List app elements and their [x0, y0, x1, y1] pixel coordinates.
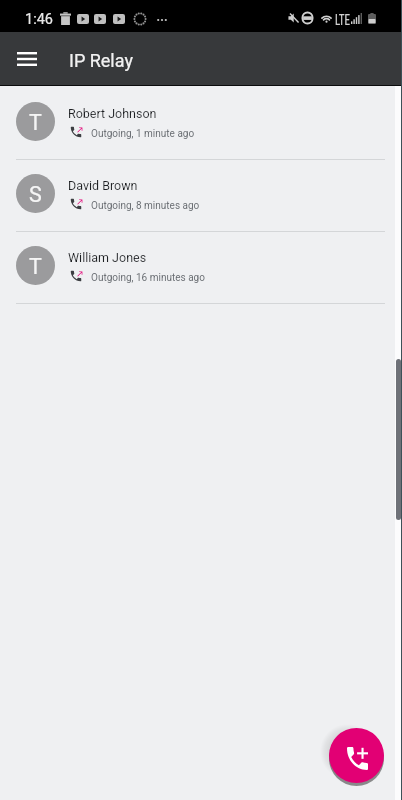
staticText: David Brown: [68, 178, 138, 193]
staticText: S: [29, 182, 42, 207]
button[interactable]: T: [0, 232, 402, 304]
button[interactable]: Open navigation drawer: [11, 43, 43, 75]
button[interactable]: S: [0, 160, 402, 232]
staticText: IP Relay: [69, 50, 133, 71]
staticText: Outgoing, 16 minutes ago: [91, 272, 205, 284]
staticText: Outgoing, 1 minute ago: [91, 128, 195, 140]
button[interactable]: T: [0, 88, 402, 160]
staticText: 1:46: [25, 11, 53, 28]
staticText: T: [29, 254, 42, 279]
staticText: LTE: [335, 12, 350, 29]
staticText: Robert Johnson: [68, 106, 157, 121]
staticText: William Jones: [68, 250, 147, 265]
staticText: Outgoing, 8 minutes ago: [91, 200, 200, 212]
button[interactable]: New call: [329, 728, 384, 783]
staticText: T: [29, 110, 42, 135]
